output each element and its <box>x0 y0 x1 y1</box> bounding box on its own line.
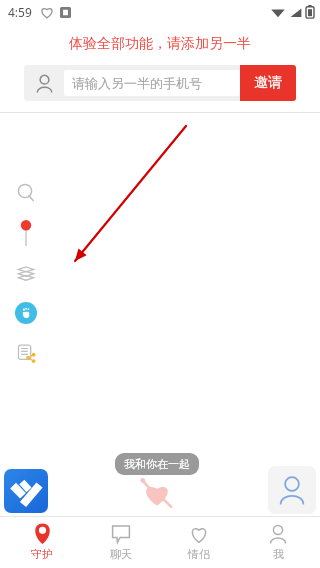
button[interactable]: Search <box>9 177 43 209</box>
button[interactable]: 守护 <box>6 516 78 568</box>
staticText: 4:59 <box>8 4 32 20</box>
button[interactable]: Share report <box>9 337 43 369</box>
button[interactable]: Location pin <box>9 217 43 249</box>
staticText: 我 <box>273 547 284 561</box>
button[interactable]: 聊天 <box>85 516 157 568</box>
button[interactable]: Map layers <box>9 257 43 289</box>
staticText: 聊天 <box>110 547 132 561</box>
staticText: 情侣 <box>188 547 210 561</box>
button[interactable]: Partner avatar <box>268 466 316 514</box>
button[interactable]: 请输入另一半的手机号 <box>64 70 240 96</box>
staticText: 请输入另一半的手机号 <box>72 75 202 91</box>
staticText: 体验全部功能，请添加另一半 <box>0 35 320 53</box>
button[interactable]: App logo <box>4 469 48 513</box>
button[interactable]: 我 <box>242 516 314 568</box>
button[interactable]: 邀请 <box>240 65 296 101</box>
staticText: 我和你在一起 <box>124 457 190 471</box>
button[interactable]: Footprints <box>9 297 43 329</box>
staticText: 守护 <box>31 547 53 561</box>
button[interactable]: 情侣 <box>163 516 235 568</box>
button[interactable]: 我和你在一起 <box>115 453 199 475</box>
staticText: 邀请 <box>254 74 282 92</box>
